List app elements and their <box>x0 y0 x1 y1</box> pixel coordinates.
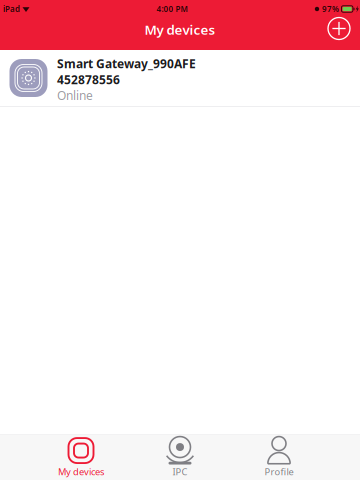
button[interactable]: Profile <box>229 435 328 480</box>
button[interactable]: IPC <box>130 435 229 480</box>
staticText: 452878556 <box>57 71 120 87</box>
staticText: My devices <box>144 21 215 38</box>
staticText: Online <box>57 87 93 103</box>
button[interactable]: My devices <box>31 435 130 480</box>
button[interactable]: Smart Gateway_990AFE <box>0 50 360 106</box>
staticText: 4:00 PM <box>156 4 187 14</box>
staticText: IPC <box>172 466 187 478</box>
staticText: Smart Gateway_990AFE <box>57 56 196 71</box>
staticText: My devices <box>58 466 104 478</box>
staticText: Profile <box>264 466 293 478</box>
staticText: 97% <box>322 4 339 14</box>
staticText: iPad <box>3 4 20 14</box>
button[interactable]: Add device <box>318 16 360 48</box>
